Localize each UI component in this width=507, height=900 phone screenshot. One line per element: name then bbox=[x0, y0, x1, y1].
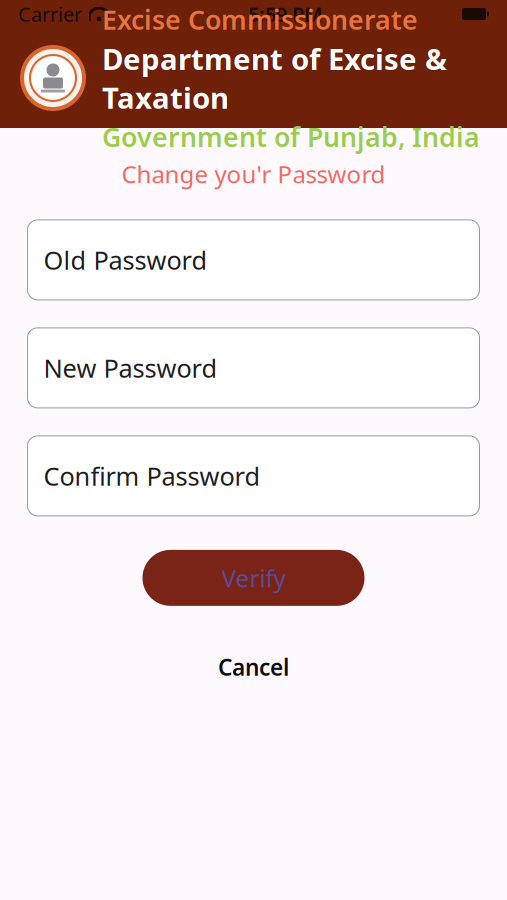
staticText: Department of Excise & Taxation bbox=[102, 39, 447, 117]
staticText: New Password bbox=[43, 351, 217, 385]
staticText: Cancel bbox=[218, 652, 289, 682]
staticText: Confirm Password bbox=[43, 459, 260, 493]
staticText: 5:59 PM bbox=[248, 1, 323, 27]
staticText: Change you'r Password bbox=[121, 158, 385, 190]
staticText: Carrier bbox=[18, 1, 82, 27]
staticText: Verify bbox=[221, 562, 285, 594]
button[interactable]: Cancel bbox=[192, 642, 315, 692]
staticText: Government of Punjab, India bbox=[102, 119, 480, 154]
button[interactable]: Verify bbox=[142, 550, 364, 606]
staticText: Excise Commissionerate bbox=[102, 2, 418, 37]
staticText: Old Password bbox=[43, 243, 207, 277]
